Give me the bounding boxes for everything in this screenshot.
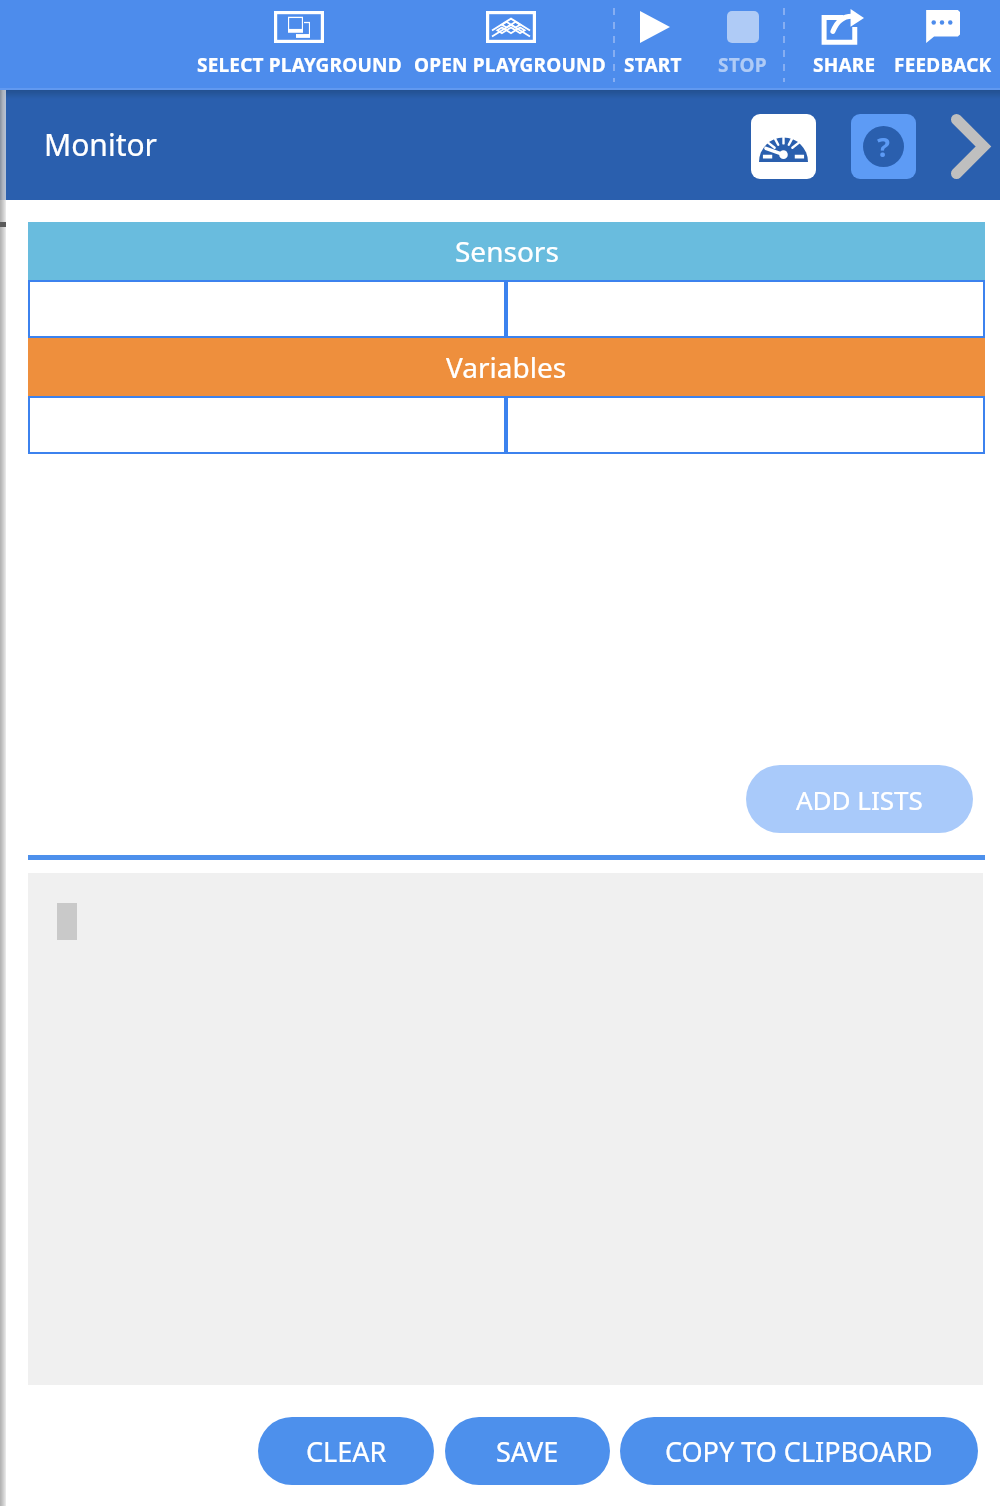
staticText: SELECT PLAYGROUND <box>197 52 402 78</box>
staticText: COPY TO CLIPBOARD <box>665 1433 933 1470</box>
staticText: SAVE <box>496 1433 559 1470</box>
staticText: ADD LISTS <box>796 782 923 817</box>
button[interactable]: Monitor dashboard <box>751 114 816 179</box>
staticText: Variables <box>446 348 567 386</box>
button[interactable]: Feedback <box>890 0 1000 90</box>
staticText: CLEAR <box>306 1433 387 1470</box>
staticText: Monitor <box>44 124 158 165</box>
staticText: SHARE <box>813 52 876 78</box>
button[interactable]: CLEAR <box>258 1417 434 1485</box>
button[interactable]: SAVE <box>445 1417 610 1485</box>
button[interactable]: Start <box>616 0 692 90</box>
button[interactable]: Stop <box>706 0 782 90</box>
button[interactable]: COPY TO CLIPBOARD <box>620 1417 978 1485</box>
staticText: ? <box>877 128 890 165</box>
button[interactable]: Next <box>940 110 1000 182</box>
staticText: START <box>624 52 682 78</box>
button[interactable]: Help <box>851 114 916 179</box>
staticText: OPEN PLAYGROUND <box>414 52 606 78</box>
button[interactable]: Select playground <box>200 0 400 90</box>
staticText: Sensors <box>455 232 559 270</box>
staticText: FEEDBACK <box>894 52 992 78</box>
button[interactable]: Share <box>800 0 888 90</box>
button[interactable]: ADD LISTS <box>746 765 973 833</box>
button[interactable]: Open playground <box>410 0 610 90</box>
staticText: STOP <box>718 52 767 78</box>
